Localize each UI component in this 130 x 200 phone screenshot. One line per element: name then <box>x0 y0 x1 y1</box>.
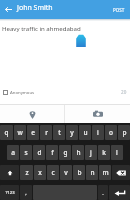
staticText: 20 <box>121 89 127 95</box>
staticText: ?123 <box>5 190 15 196</box>
button[interactable]: o <box>105 125 117 140</box>
button[interactable]: s <box>20 145 32 160</box>
button[interactable]: y <box>66 125 78 140</box>
button[interactable]: d <box>33 145 45 160</box>
staticText: a <box>11 148 15 157</box>
staticText: u <box>83 128 88 137</box>
button[interactable]: Add location <box>0 105 64 123</box>
staticText: m <box>102 168 109 177</box>
button[interactable]: v <box>60 165 72 180</box>
staticText: c <box>51 168 55 177</box>
button[interactable]: f <box>46 145 58 160</box>
staticText: j <box>90 148 92 157</box>
button[interactable]: z <box>20 165 33 180</box>
button[interactable]: u <box>79 125 91 140</box>
button[interactable]: Back <box>0 1 17 18</box>
button[interactable]: c <box>47 165 59 180</box>
button[interactable]: l <box>111 145 123 160</box>
staticText: z <box>25 168 29 177</box>
staticText: r <box>45 128 48 137</box>
staticText: v <box>64 168 68 177</box>
button[interactable]: b <box>73 165 85 180</box>
staticText: d <box>37 148 42 157</box>
button[interactable]: m <box>99 165 111 180</box>
button[interactable]: r <box>40 125 52 140</box>
staticText: h <box>76 148 81 157</box>
staticText: Anonymous <box>10 89 35 95</box>
button[interactable]: . <box>98 185 108 200</box>
staticText: e <box>31 128 35 137</box>
staticText: b <box>77 168 82 177</box>
staticText: l <box>116 148 118 157</box>
button[interactable]: t <box>53 125 65 140</box>
staticText: POST <box>113 7 125 13</box>
staticText: i <box>97 128 99 137</box>
staticText: Heavy traffic in ahmedabad <box>2 24 81 32</box>
button[interactable]: Shift <box>0 165 19 180</box>
staticText: . <box>102 189 104 196</box>
button[interactable]: , <box>20 185 32 200</box>
button[interactable]: q <box>0 125 13 140</box>
button[interactable]: h <box>72 145 84 160</box>
button[interactable]: POST <box>108 0 130 19</box>
staticText: s <box>24 148 28 157</box>
staticText: y <box>70 128 74 137</box>
staticText: t <box>58 128 61 137</box>
button[interactable]: Backspace <box>112 165 130 180</box>
staticText: o <box>109 128 113 137</box>
button[interactable]: g <box>59 145 71 160</box>
button[interactable]: a <box>7 145 19 160</box>
button[interactable]: Anonymous <box>3 88 35 96</box>
staticText: q <box>4 128 9 137</box>
button[interactable]: w <box>14 125 26 140</box>
staticText: p <box>122 128 127 137</box>
staticText: x <box>38 168 42 177</box>
staticText: n <box>90 168 95 177</box>
button[interactable]: p <box>118 125 130 140</box>
button[interactable]: k <box>98 145 110 160</box>
staticText: John Smith <box>17 3 53 13</box>
staticText: f <box>51 148 54 157</box>
button[interactable]: Enter <box>109 185 130 200</box>
staticText: w <box>17 128 23 137</box>
button[interactable]: j <box>85 145 97 160</box>
button[interactable]: ?123 <box>0 185 19 200</box>
button[interactable]: x <box>34 165 46 180</box>
button[interactable]: e <box>27 125 39 140</box>
button[interactable]: n <box>86 165 98 180</box>
staticText: k <box>102 148 106 157</box>
button[interactable]: i <box>92 125 104 140</box>
button[interactable]: Add photo <box>65 105 130 123</box>
staticText: , <box>25 189 27 196</box>
staticText: g <box>63 148 68 157</box>
